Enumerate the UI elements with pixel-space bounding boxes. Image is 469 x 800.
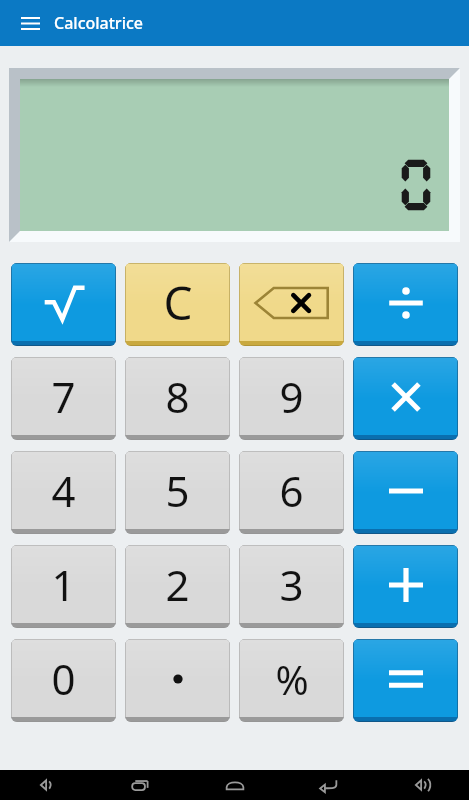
button[interactable]: % (239, 639, 344, 722)
button[interactable]: 3 (239, 545, 344, 628)
staticText: 6 (279, 462, 304, 519)
button[interactable]: Plus (353, 545, 458, 628)
button[interactable]: Divide (353, 263, 458, 346)
staticText: 4 (51, 462, 76, 519)
button[interactable]: 0 (11, 639, 116, 722)
staticText: 5 (165, 462, 190, 519)
button[interactable]: 8 (125, 357, 230, 440)
button[interactable]: Home (213, 770, 257, 800)
button[interactable]: C (125, 263, 230, 346)
button[interactable]: Back (306, 770, 350, 800)
staticText: 7 (51, 368, 76, 425)
staticText: 8 (165, 368, 190, 425)
button[interactable]: Volume up (400, 770, 444, 800)
staticText: 1 (51, 556, 76, 613)
button[interactable]: Multiply (353, 357, 458, 440)
button[interactable]: Recents (119, 770, 163, 800)
button[interactable]: 5 (125, 451, 230, 534)
button[interactable]: Equals (353, 639, 458, 722)
staticText: Calcolatrice (54, 12, 143, 34)
staticText: 2 (165, 556, 190, 613)
button[interactable]: 7 (11, 357, 116, 440)
button[interactable]: 9 (239, 357, 344, 440)
staticText: C (163, 271, 193, 334)
staticText: 0 (51, 650, 76, 707)
button[interactable]: 6 (239, 451, 344, 534)
staticText: 9 (279, 368, 304, 425)
button[interactable]: 1 (11, 545, 116, 628)
button[interactable]: Volume down (25, 770, 69, 800)
staticText: 3 (279, 556, 304, 613)
button[interactable]: 4 (11, 451, 116, 534)
button[interactable]: 2 (125, 545, 230, 628)
button[interactable]: Square root (11, 263, 116, 346)
button[interactable]: Menu (12, 5, 48, 41)
button[interactable]: Minus (353, 451, 458, 534)
button[interactable]: Backspace (239, 263, 344, 346)
staticText: % (275, 652, 309, 706)
button[interactable]: Decimal point (125, 639, 230, 722)
